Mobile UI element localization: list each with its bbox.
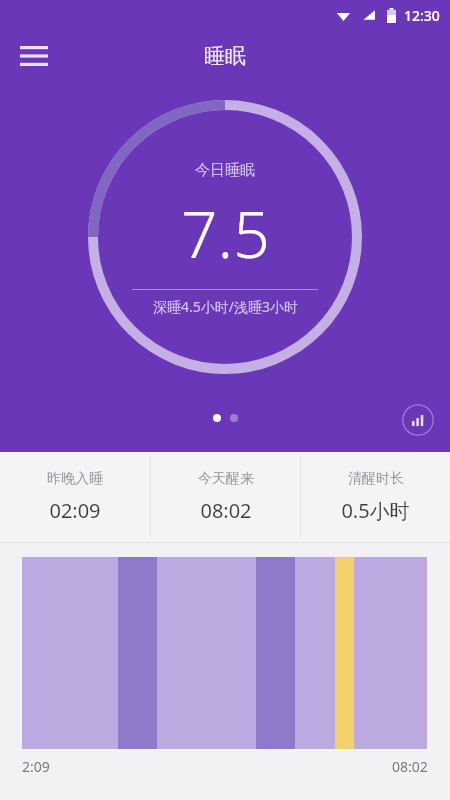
- staticText: 清醒时长: [348, 470, 404, 488]
- staticText: 02:09: [49, 497, 101, 524]
- staticText: 08:02: [200, 497, 252, 524]
- button[interactable]: Sleep stages timeline: [0, 557, 450, 749]
- staticText: 0.5小时: [341, 497, 410, 524]
- button[interactable]: 清醒时长: [301, 452, 450, 542]
- staticText: 7.5: [181, 190, 270, 277]
- staticText: 今日睡眠: [195, 161, 255, 180]
- staticText: 12:30: [404, 6, 440, 25]
- staticText: 深睡4.5小时/浅睡3小时: [153, 297, 298, 316]
- staticText: 昨晚入睡: [47, 470, 103, 488]
- staticText: 08:02: [392, 757, 428, 776]
- button[interactable]: View sleep statistics: [402, 404, 434, 436]
- button[interactable]: 今天醒来: [151, 452, 300, 542]
- button[interactable]: Open navigation menu: [11, 33, 57, 79]
- staticText: 2:09: [22, 757, 50, 776]
- staticText: 今天醒来: [198, 470, 254, 488]
- staticText: 睡眠: [204, 43, 246, 69]
- button[interactable]: 昨晚入睡: [0, 452, 150, 542]
